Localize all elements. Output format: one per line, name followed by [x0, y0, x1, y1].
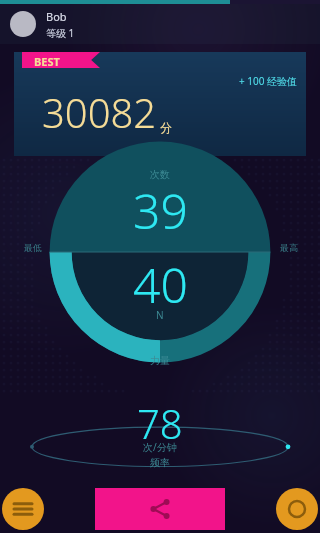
button[interactable]: More [276, 488, 318, 530]
staticText: 39 [133, 178, 188, 243]
staticText: 次/分钟 [143, 440, 177, 454]
staticText: 30082 [42, 85, 157, 139]
staticText: N [156, 308, 164, 322]
staticText: Bob [46, 9, 67, 24]
staticText: 最高 [280, 242, 298, 253]
button[interactable]: Share [95, 488, 225, 530]
staticText: 频率 [150, 456, 170, 469]
button[interactable]: BEST [14, 52, 306, 156]
staticText: 分 [160, 120, 172, 135]
staticText: 78 [137, 396, 183, 450]
staticText: 等级 1 [46, 26, 75, 40]
button[interactable]: Bob [0, 4, 320, 44]
staticText: 力量 [150, 354, 170, 367]
button[interactable]: Menu [2, 488, 44, 530]
staticText: BEST [34, 54, 60, 69]
staticText: 40 [133, 252, 188, 317]
staticText: + 100 经验值 [239, 74, 298, 88]
staticText: 最低 [24, 242, 42, 253]
staticText: 次数 [150, 168, 170, 181]
